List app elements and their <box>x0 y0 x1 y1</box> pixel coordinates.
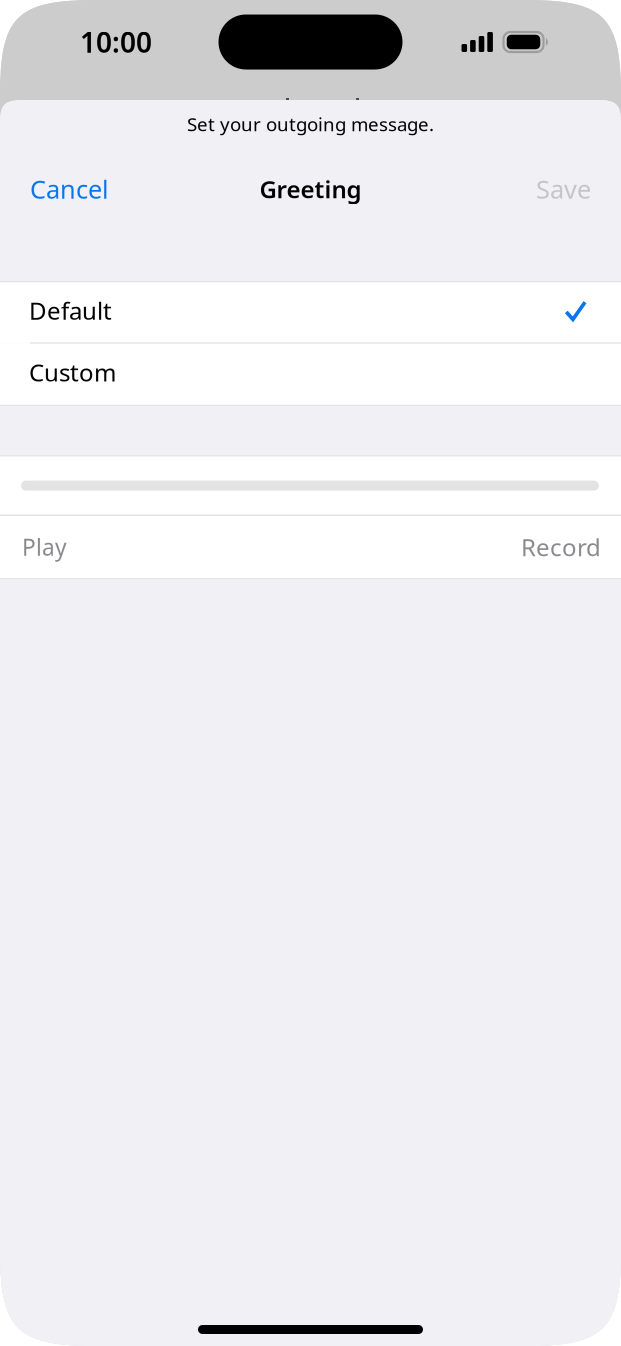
staticText: 10:00 <box>80 23 152 61</box>
staticText: Custom <box>29 356 116 388</box>
button[interactable]: Record <box>521 522 601 572</box>
button[interactable]: Save <box>536 163 591 215</box>
button[interactable]: Default <box>0 282 621 342</box>
button[interactable]: Play <box>22 523 67 571</box>
button[interactable]: Cancel <box>30 163 109 215</box>
staticText: Greeting <box>259 173 361 205</box>
staticText: Save <box>536 172 591 206</box>
staticText: Default <box>29 294 112 326</box>
button[interactable]: Custom <box>0 344 621 405</box>
staticText: Cancel <box>30 172 109 206</box>
staticText: Record <box>521 531 601 563</box>
staticText: Set your outgoing message. <box>187 112 434 136</box>
staticText: Play <box>22 532 67 562</box>
